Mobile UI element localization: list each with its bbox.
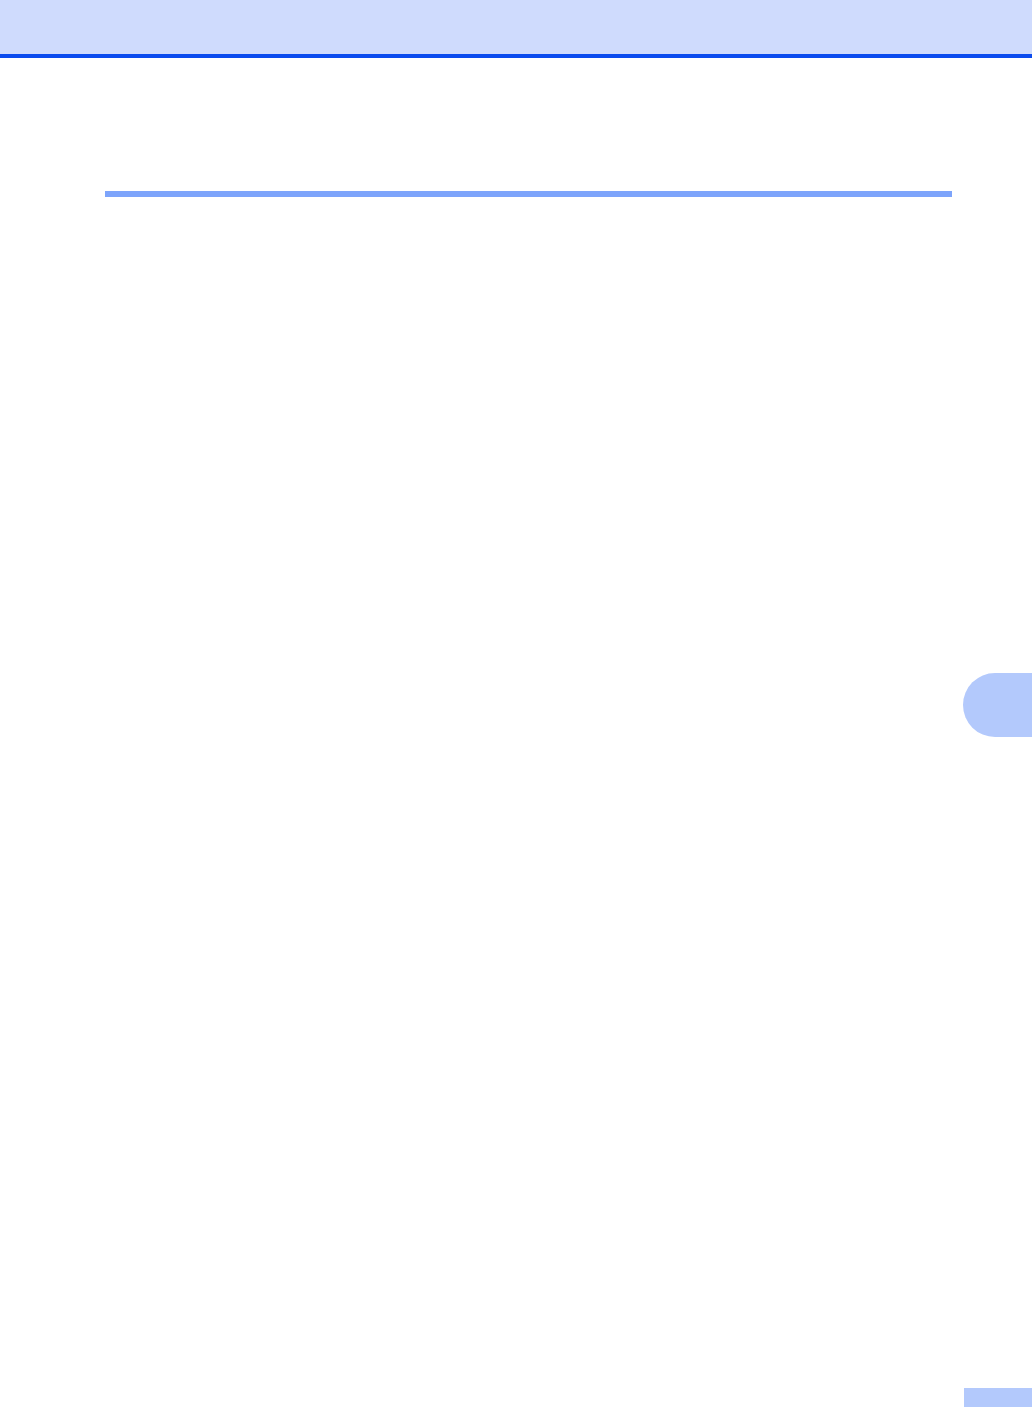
button[interactable]: Chapter tab (963, 673, 1032, 737)
